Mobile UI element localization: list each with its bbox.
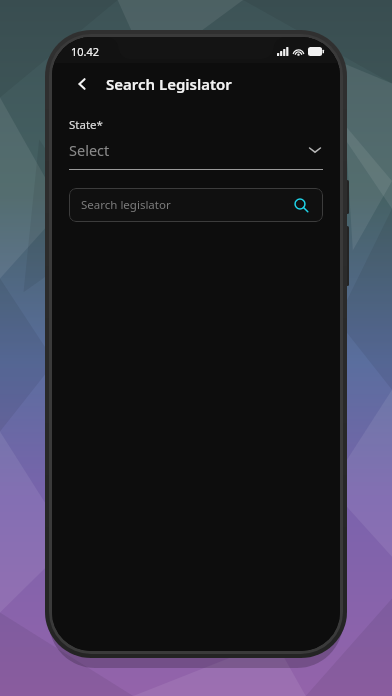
button[interactable]: Back xyxy=(66,68,98,100)
staticText: 10.42 xyxy=(71,44,100,59)
button[interactable]: Search xyxy=(291,195,311,215)
staticText: Search Legislator xyxy=(106,74,232,94)
staticText: Select xyxy=(69,140,307,160)
staticText: State* xyxy=(69,117,103,133)
staticText: Search legislator xyxy=(81,197,291,213)
button[interactable]: State* xyxy=(69,117,323,170)
button[interactable]: Search legislator xyxy=(69,188,323,222)
